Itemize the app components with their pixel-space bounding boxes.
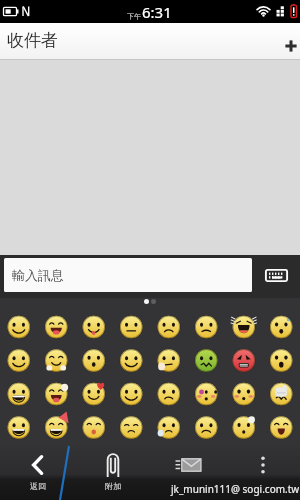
button[interactable]: Attach xyxy=(75,446,150,500)
button[interactable]: Add recipient xyxy=(280,23,300,60)
button[interactable]: Back xyxy=(0,446,75,500)
staticText: 附加 xyxy=(105,481,121,491)
staticText: 收件者 xyxy=(7,30,58,51)
staticText: jk_munin111@ sogi.com.tw xyxy=(171,482,300,496)
button[interactable]: 輸入訊息 xyxy=(4,258,252,292)
staticText: 返回 xyxy=(30,481,46,491)
staticText: 下午 xyxy=(127,12,141,21)
button[interactable]: More options xyxy=(225,446,300,500)
button[interactable]: Show keyboard xyxy=(252,258,300,292)
button[interactable]: Send xyxy=(150,446,225,500)
staticText: 輸入訊息 xyxy=(12,267,64,283)
staticText: 6:31 xyxy=(142,2,172,22)
